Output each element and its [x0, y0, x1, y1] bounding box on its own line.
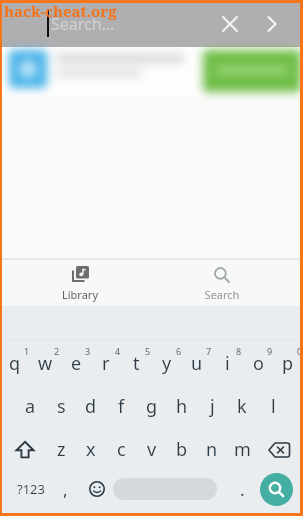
button[interactable] — [0, 47, 303, 97]
staticText: d — [85, 394, 97, 419]
button[interactable]: f — [106, 384, 136, 428]
staticText: t — [133, 351, 140, 376]
button[interactable]: s — [46, 384, 76, 428]
button[interactable] — [258, 428, 300, 472]
staticText: y — [162, 351, 172, 376]
button[interactable]: o — [243, 341, 273, 385]
staticText: g — [146, 394, 158, 419]
button[interactable]: h — [167, 384, 197, 428]
button[interactable]: x — [76, 427, 106, 471]
button[interactable]: . — [227, 467, 257, 511]
staticText: x — [86, 437, 96, 462]
button[interactable] — [82, 467, 112, 511]
button[interactable]: m — [227, 427, 257, 471]
staticText: 6 — [176, 345, 182, 357]
staticText: q — [9, 351, 21, 376]
button[interactable]: i — [212, 341, 242, 385]
staticText: 8 — [236, 345, 242, 357]
button[interactable]: , — [50, 467, 80, 511]
button[interactable]: v — [137, 427, 167, 471]
button[interactable]: Search — [172, 260, 272, 306]
staticText: 1 — [24, 345, 30, 357]
button[interactable] — [214, 8, 246, 40]
staticText: b — [176, 437, 188, 462]
button[interactable] — [260, 473, 293, 506]
staticText: 7 — [206, 345, 212, 357]
staticText: 2 — [54, 345, 60, 357]
button[interactable]: c — [106, 427, 136, 471]
button[interactable]: p — [273, 341, 303, 385]
staticText: v — [147, 437, 157, 462]
staticText: j — [210, 394, 215, 419]
staticText: 4 — [115, 345, 121, 357]
button[interactable]: u — [182, 341, 212, 385]
staticText: o — [253, 351, 264, 376]
staticText: Library — [30, 287, 130, 302]
staticText: 5 — [145, 345, 151, 357]
staticText: k — [237, 394, 247, 419]
button[interactable]: y — [152, 341, 182, 385]
button[interactable]: e — [61, 341, 91, 385]
staticText: r — [102, 351, 110, 376]
staticText: l — [271, 394, 276, 419]
button[interactable]: b — [167, 427, 197, 471]
staticText: s — [57, 394, 66, 419]
button[interactable]: w — [30, 341, 60, 385]
button[interactable]: a — [15, 384, 45, 428]
staticText: Search… — [51, 13, 115, 35]
staticText: m — [234, 437, 251, 462]
button[interactable] — [113, 478, 217, 500]
staticText: i — [225, 351, 230, 376]
button[interactable]: z — [46, 427, 76, 471]
staticText: hack-cheat.org — [4, 1, 117, 21]
staticText: f — [118, 394, 125, 419]
button[interactable]: ?123 — [8, 467, 54, 511]
button[interactable]: l — [258, 384, 288, 428]
staticText: u — [191, 351, 203, 376]
staticText: h — [176, 394, 188, 419]
button[interactable]: g — [137, 384, 167, 428]
staticText: 0 — [297, 345, 303, 357]
button[interactable]: j — [197, 384, 227, 428]
button[interactable]: k — [227, 384, 257, 428]
button[interactable]: Library — [30, 260, 130, 306]
button[interactable]: r — [91, 341, 121, 385]
staticText: n — [206, 437, 218, 462]
staticText: ?123 — [17, 480, 45, 498]
button[interactable]: q — [0, 341, 30, 385]
staticText: a — [25, 394, 36, 419]
button[interactable]: t — [121, 341, 151, 385]
staticText: z — [57, 437, 66, 462]
button[interactable]: n — [197, 427, 227, 471]
staticText: , — [63, 478, 68, 501]
staticText: 3 — [85, 345, 91, 357]
staticText: w — [38, 351, 53, 376]
staticText: Search — [172, 287, 272, 302]
button[interactable] — [255, 8, 287, 40]
button[interactable]: d — [76, 384, 106, 428]
button[interactable]: Search… — [0, 0, 303, 47]
staticText: c — [117, 437, 126, 462]
button[interactable] — [4, 428, 46, 472]
staticText: 9 — [267, 345, 273, 357]
staticText: . — [240, 478, 245, 501]
staticText: p — [282, 351, 294, 376]
staticText: e — [71, 351, 82, 376]
